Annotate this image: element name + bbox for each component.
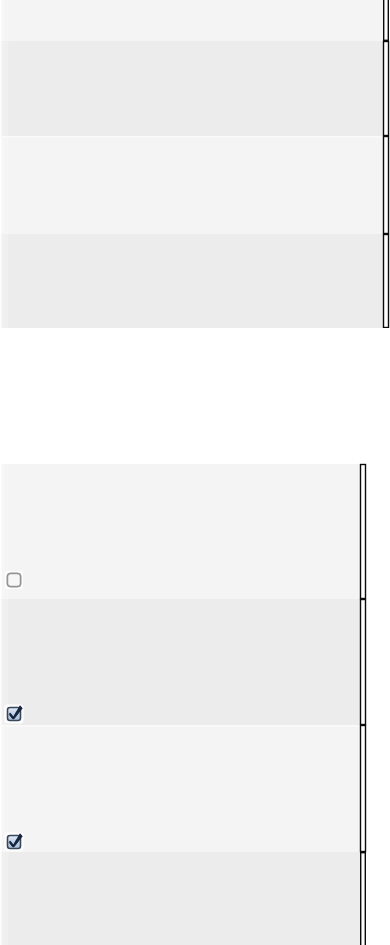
button[interactable]: Checked checkbox: [4, 832, 24, 852]
button[interactable]: Unchecked checkbox: [4, 570, 24, 590]
button[interactable]: Checked checkbox: [4, 704, 24, 724]
button[interactable]: Checked checkbox: [0, 599, 360, 725]
button[interactable]: Unchecked checkbox: [0, 464, 360, 599]
button[interactable]: Checked checkbox: [0, 725, 360, 852]
